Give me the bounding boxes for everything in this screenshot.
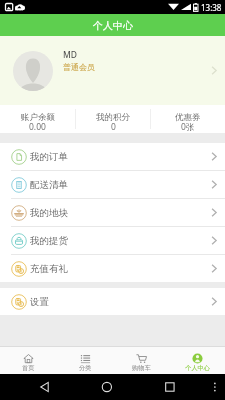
staticText: 0 [111,121,116,133]
staticText: 我的地块 [30,207,68,219]
button[interactable]: 首页 [0,346,57,374]
staticText: 优惠券 [175,112,201,123]
staticText: 首页 [22,364,35,372]
other: 账户资料 [211,66,217,75]
staticText: 我的积分 [96,112,130,123]
staticText: 我的订单 [30,151,68,163]
button[interactable]: 设置 [0,288,225,315]
staticText: 普通会员 [63,62,95,72]
staticText: 账户余额 [21,112,55,123]
button[interactable]: 账户余额 [0,105,75,133]
staticText: 配送清单 [30,179,68,191]
staticText: 充值有礼 [30,263,68,275]
staticText: 购物车 [132,364,151,372]
button[interactable]: MD [0,36,225,105]
staticText: 设置 [30,296,49,308]
staticText: MD [63,49,78,61]
staticText: 我的提货 [30,235,68,247]
button[interactable]: 我的订单 [0,143,225,170]
button[interactable]: 个人中心 [169,346,225,374]
button[interactable]: 优惠券 [151,105,225,133]
staticText: 个人中心 [93,19,133,32]
staticText: 13:38 [201,2,222,13]
button[interactable]: 分类 [57,346,113,374]
staticText: 0张 [181,121,195,133]
button[interactable]: 配送清单 [0,171,225,198]
button[interactable]: 我的提货 [0,227,225,254]
button[interactable]: 充值有礼 [0,255,225,282]
staticText: 分类 [79,364,92,372]
button[interactable]: 我的积分 [76,105,150,133]
button[interactable]: 购物车 [113,346,169,374]
staticText: 0.00 [29,121,46,133]
button[interactable]: 我的地块 [0,199,225,226]
staticText: 个人中心 [185,364,210,372]
